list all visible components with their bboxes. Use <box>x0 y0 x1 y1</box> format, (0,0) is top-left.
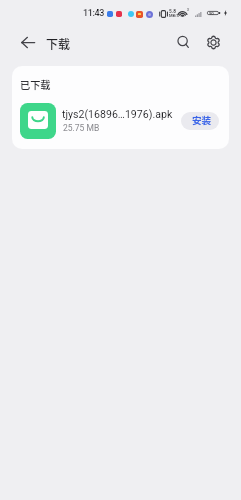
button[interactable]: 安装 <box>181 112 219 130</box>
staticText: x <box>187 7 190 12</box>
staticText: MB/S <box>169 13 180 18</box>
staticText: tjys2(16896…1976).apk <box>62 108 173 120</box>
button[interactable]: Search <box>169 27 198 56</box>
button[interactable]: Back <box>13 27 43 56</box>
staticText: 5.8 <box>169 9 176 15</box>
button[interactable]: Settings <box>199 28 228 57</box>
staticText: 下载 <box>46 35 71 52</box>
button[interactable]: tjys2(16896…1976).apk <box>12 99 229 141</box>
staticText: 已下载 <box>20 77 51 92</box>
staticText: 安装 <box>192 113 212 127</box>
staticText: 11:43 <box>83 8 105 19</box>
staticText: 25.75 MB <box>63 123 100 133</box>
staticText: 90 <box>209 11 214 16</box>
